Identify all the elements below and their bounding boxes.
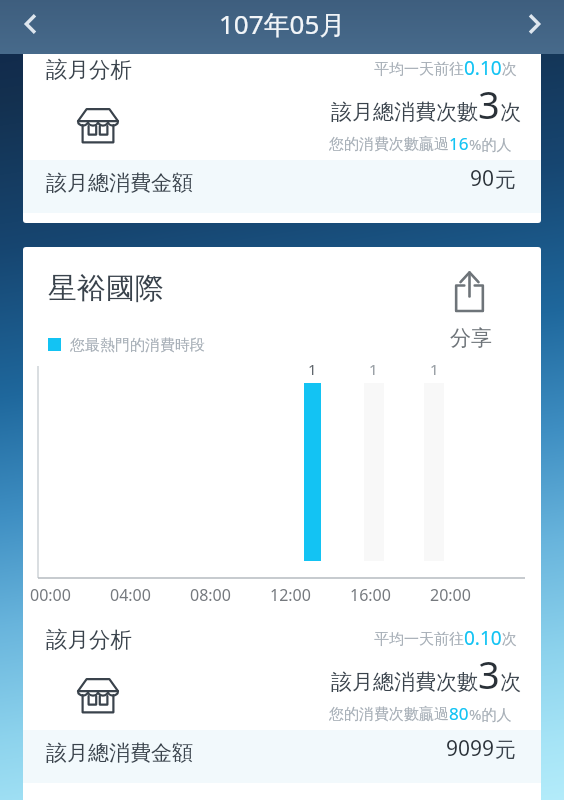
button[interactable]: 分享 <box>443 265 495 353</box>
staticText: 0.10 <box>464 625 502 651</box>
staticText: 107年05月 <box>219 6 346 42</box>
staticText: %的人 <box>469 134 512 154</box>
staticText: 元 <box>495 167 516 193</box>
staticText: 平均一天前往 <box>374 60 464 79</box>
staticText: 分享 <box>450 325 492 351</box>
staticText: 次 <box>502 60 517 79</box>
staticText: 80 <box>449 702 469 725</box>
staticText: 次 <box>502 630 517 649</box>
staticText: 3 <box>478 78 500 130</box>
staticText: 16:00 <box>350 584 391 606</box>
staticText: 元 <box>495 737 516 763</box>
staticText: 該月總消費金額 <box>46 740 193 766</box>
staticText: 20:00 <box>430 584 471 606</box>
staticText: 次 <box>500 669 521 695</box>
staticText: 該月總消費次數 <box>331 669 478 695</box>
staticText: 次 <box>500 99 521 125</box>
staticText: 1 <box>369 359 378 379</box>
staticText: 該月分析 <box>46 626 132 653</box>
staticText: 00:00 <box>30 584 71 606</box>
staticText: 16 <box>449 132 469 155</box>
staticText: 平均一天前往 <box>374 630 464 649</box>
staticText: 您的消費次數贏過 <box>329 705 449 724</box>
staticText: 1 <box>308 359 317 379</box>
staticText: 星裕國際 <box>48 270 164 307</box>
staticText: 08:00 <box>190 584 231 606</box>
staticText: 您的消費次數贏過 <box>329 135 449 154</box>
staticText: 1 <box>430 359 439 379</box>
staticText: %的人 <box>469 704 512 724</box>
staticText: 該月分析 <box>46 56 132 83</box>
staticText: 12:00 <box>270 584 311 606</box>
button[interactable]: 該月分析 <box>23 54 541 223</box>
button[interactable]: 星裕國際 <box>23 247 541 800</box>
staticText: 您最熱門的消費時段 <box>70 336 205 355</box>
staticText: 3 <box>478 648 500 700</box>
staticText: 該月總消費次數 <box>331 99 478 125</box>
button[interactable]: Previous month <box>0 0 58 54</box>
staticText: 9099 <box>446 734 495 763</box>
staticText: 04:00 <box>110 584 151 606</box>
staticText: 90 <box>470 164 495 193</box>
staticText: 該月總消費金額 <box>46 170 193 196</box>
button[interactable]: Next month <box>506 0 564 54</box>
staticText: 0.10 <box>464 55 502 81</box>
